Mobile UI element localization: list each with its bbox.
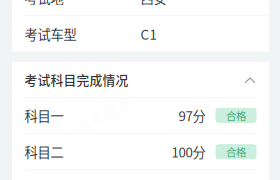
staticText: C1 <box>140 24 156 43</box>
button[interactable]: 考试地 <box>12 0 269 15</box>
staticText: 西安 <box>140 0 166 7</box>
button[interactable]: 考试车型 <box>12 16 269 52</box>
staticText: 合格 <box>226 108 246 123</box>
staticText: 合格 <box>226 144 246 159</box>
staticText: 100分 <box>171 142 205 161</box>
staticText: 考试科目完成情况 <box>24 70 128 89</box>
button[interactable]: 考试科目完成情况 <box>12 62 269 97</box>
staticText: 科目二 <box>24 142 63 161</box>
button[interactable]: 科目一 <box>12 98 269 133</box>
staticText: 97分 <box>178 106 205 125</box>
staticText: 考试车型 <box>24 24 76 43</box>
staticText: 考试地 <box>24 0 63 7</box>
staticText: 科目一 <box>24 106 63 125</box>
button[interactable]: 科目二 <box>12 134 269 169</box>
